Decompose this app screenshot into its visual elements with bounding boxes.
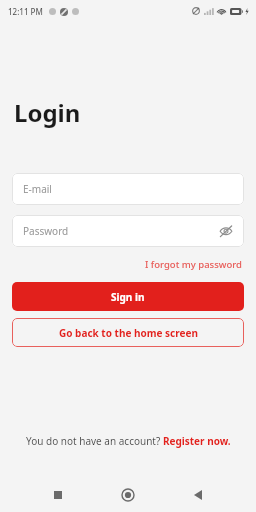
button[interactable]: You do not have an account? Register now… bbox=[0, 428, 256, 454]
button[interactable]: Back bbox=[184, 481, 212, 509]
button[interactable]: Password bbox=[12, 215, 244, 247]
button[interactable]: Go back to the home screen bbox=[12, 318, 244, 347]
button[interactable]: Show password bbox=[214, 219, 238, 243]
staticText: Password bbox=[23, 224, 69, 238]
staticText: 12:11 PM bbox=[8, 6, 43, 17]
button[interactable]: E-mail bbox=[12, 173, 244, 205]
staticText: Go back to the home screen bbox=[59, 326, 198, 340]
button[interactable]: Recents bbox=[44, 481, 72, 509]
button[interactable]: I forgot my password bbox=[143, 256, 244, 273]
staticText: Sign in bbox=[111, 290, 145, 304]
staticText: You do not have an account? Register now… bbox=[26, 434, 231, 448]
button[interactable]: Home bbox=[114, 481, 142, 509]
staticText: I forgot my password bbox=[145, 258, 242, 271]
staticText: Login bbox=[14, 96, 81, 129]
button[interactable]: Sign in bbox=[12, 282, 244, 311]
staticText: E-mail bbox=[23, 182, 52, 196]
